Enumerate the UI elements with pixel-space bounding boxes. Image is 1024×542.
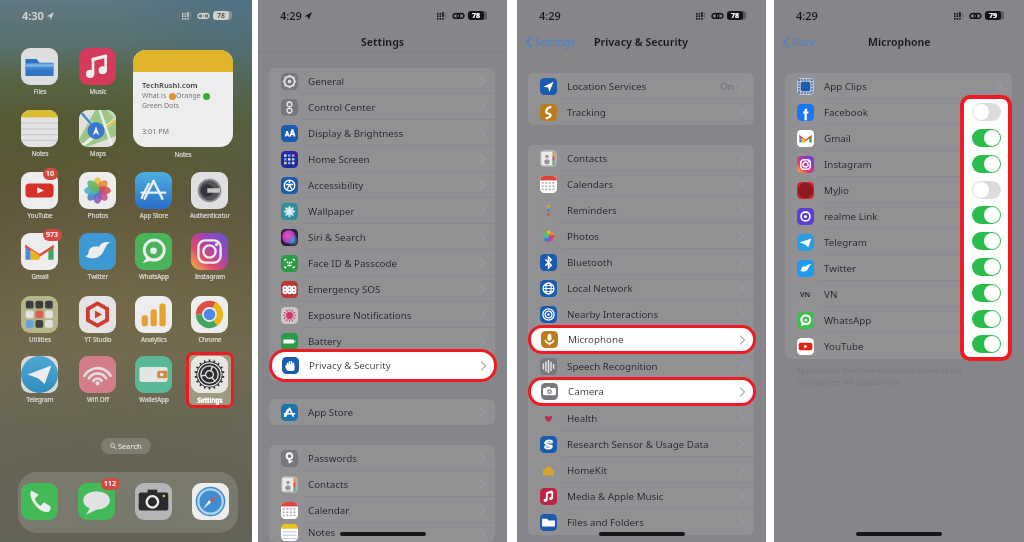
staticText: VN bbox=[824, 288, 838, 301]
button[interactable]: realme Link microphone access bbox=[972, 206, 1001, 224]
button[interactable]: Telegram microphone access bbox=[972, 232, 1001, 250]
button[interactable]: Search bbox=[101, 438, 151, 454]
staticText: Accessibility bbox=[308, 179, 364, 192]
button[interactable]: Facebook microphone access bbox=[972, 103, 1001, 121]
button[interactable]: Local Network bbox=[528, 275, 754, 301]
button[interactable]: Back bbox=[774, 32, 822, 52]
staticText: Calendar bbox=[308, 504, 350, 517]
staticText: On bbox=[720, 80, 734, 93]
button[interactable]: WhatsApp bbox=[135, 233, 172, 270]
button[interactable]: WhatsApp microphone access bbox=[972, 310, 1001, 328]
button[interactable]: Calendar bbox=[269, 497, 495, 523]
button[interactable]: Bluetooth bbox=[528, 249, 754, 275]
button[interactable]: Files and Folders bbox=[528, 509, 754, 535]
button[interactable]: WhatsApp bbox=[785, 307, 1012, 333]
button[interactable]: Exposure Notifications bbox=[269, 302, 495, 328]
button[interactable]: Gmail bbox=[785, 125, 1012, 151]
button[interactable]: Utilities bbox=[21, 296, 58, 333]
button[interactable]: Wifi Off bbox=[79, 356, 116, 393]
button[interactable]: Files bbox=[21, 48, 58, 85]
button[interactable]: Research Sensor & Usage Data bbox=[528, 431, 754, 457]
button[interactable]: Settings bbox=[191, 356, 228, 393]
button[interactable]: Twitter microphone access bbox=[972, 258, 1001, 276]
button[interactable]: realme Link bbox=[785, 203, 1012, 229]
button[interactable]: Twitter bbox=[79, 233, 116, 270]
button[interactable]: Music bbox=[79, 48, 116, 85]
button[interactable]: TechRushi.com bbox=[133, 50, 233, 147]
button[interactable]: YouTube bbox=[21, 172, 58, 209]
button[interactable]: Display & Brightness bbox=[269, 120, 495, 146]
button[interactable]: Calendars bbox=[528, 171, 754, 197]
button[interactable]: Media & Apple Music bbox=[528, 483, 754, 509]
staticText: Camera bbox=[568, 385, 604, 398]
button[interactable]: Notes bbox=[21, 110, 58, 147]
button[interactable]: HomeKit bbox=[528, 457, 754, 483]
button[interactable]: Passwords bbox=[269, 445, 495, 471]
staticText: Notes bbox=[308, 526, 336, 539]
button[interactable]: Safari bbox=[192, 483, 229, 520]
button[interactable]: Siri & Search bbox=[269, 224, 495, 250]
button[interactable]: Emergency SOS bbox=[269, 276, 495, 302]
button[interactable]: App Store bbox=[135, 172, 172, 209]
staticText: 78 bbox=[731, 11, 740, 20]
staticText: 10 bbox=[46, 169, 55, 179]
button[interactable]: Gmail microphone access bbox=[972, 129, 1001, 147]
staticText: Microphone bbox=[568, 333, 624, 346]
button[interactable]: Instagram bbox=[785, 151, 1012, 177]
button[interactable]: Camera bbox=[529, 378, 755, 405]
button[interactable]: Facebook bbox=[785, 99, 1012, 125]
button[interactable]: Telegram bbox=[785, 229, 1012, 255]
button[interactable]: Privacy & Security bbox=[270, 350, 496, 381]
button[interactable]: Twitter bbox=[785, 255, 1012, 281]
button[interactable]: Location Services bbox=[528, 73, 754, 99]
button[interactable]: Telegram bbox=[21, 356, 58, 393]
button[interactable]: YouTube bbox=[785, 333, 1012, 359]
button[interactable]: Health bbox=[528, 405, 754, 431]
button[interactable]: Photos bbox=[528, 223, 754, 249]
button[interactable]: Authenticator bbox=[191, 172, 228, 209]
button[interactable]: Chrome bbox=[191, 296, 228, 333]
button[interactable]: Contacts bbox=[269, 471, 495, 497]
button[interactable]: Reminders bbox=[528, 197, 754, 223]
button[interactable]: MyJio microphone access bbox=[972, 181, 1001, 199]
staticText: Emergency SOS bbox=[308, 283, 381, 296]
button[interactable]: Gmail bbox=[21, 233, 58, 270]
button[interactable]: General bbox=[269, 68, 495, 94]
button[interactable]: Photos bbox=[79, 172, 116, 209]
button[interactable]: Wallpaper bbox=[269, 198, 495, 224]
button[interactable]: YT Studio bbox=[79, 296, 116, 333]
button[interactable]: YouTube microphone access bbox=[972, 335, 1001, 353]
button[interactable]: Home Screen bbox=[269, 146, 495, 172]
staticText: Speech Recognition bbox=[567, 360, 658, 373]
button[interactable]: Accessibility bbox=[269, 172, 495, 198]
staticText: WhatsApp bbox=[824, 314, 872, 327]
button[interactable]: Settings bbox=[191, 356, 228, 393]
button[interactable]: Maps bbox=[79, 110, 116, 147]
button[interactable]: WalletApp bbox=[135, 356, 172, 393]
button[interactable]: Settings bbox=[517, 32, 581, 52]
button[interactable]: Contacts bbox=[528, 145, 754, 171]
button[interactable]: Instagram bbox=[191, 233, 228, 270]
button[interactable]: Face ID & Passcode bbox=[269, 250, 495, 276]
button[interactable]: Notes bbox=[269, 523, 495, 542]
button[interactable]: Camera bbox=[528, 379, 754, 405]
button[interactable]: Phone bbox=[21, 483, 58, 520]
button[interactable]: Microphone bbox=[528, 327, 754, 353]
button[interactable]: Control Center bbox=[269, 94, 495, 120]
button[interactable]: MyJio bbox=[785, 177, 1012, 203]
button[interactable]: Camera bbox=[135, 483, 172, 520]
button[interactable]: Speech Recognition bbox=[528, 353, 754, 379]
button[interactable]: Tracking bbox=[528, 99, 754, 125]
button[interactable]: Microphone bbox=[529, 326, 755, 353]
button[interactable]: App Store bbox=[269, 399, 495, 425]
button[interactable]: Battery bbox=[269, 328, 495, 354]
button[interactable]: Instagram microphone access bbox=[972, 155, 1001, 173]
button[interactable]: Privacy & Security bbox=[269, 354, 495, 380]
button[interactable]: VN microphone access bbox=[972, 284, 1001, 302]
button[interactable]: VN bbox=[785, 281, 1012, 307]
button[interactable]: Nearby Interactions bbox=[528, 301, 754, 327]
button[interactable]: Analytics bbox=[135, 296, 172, 333]
button[interactable]: App Clips bbox=[785, 73, 1012, 99]
staticText: Wallpaper bbox=[308, 205, 355, 218]
button[interactable]: Messages bbox=[78, 483, 115, 520]
